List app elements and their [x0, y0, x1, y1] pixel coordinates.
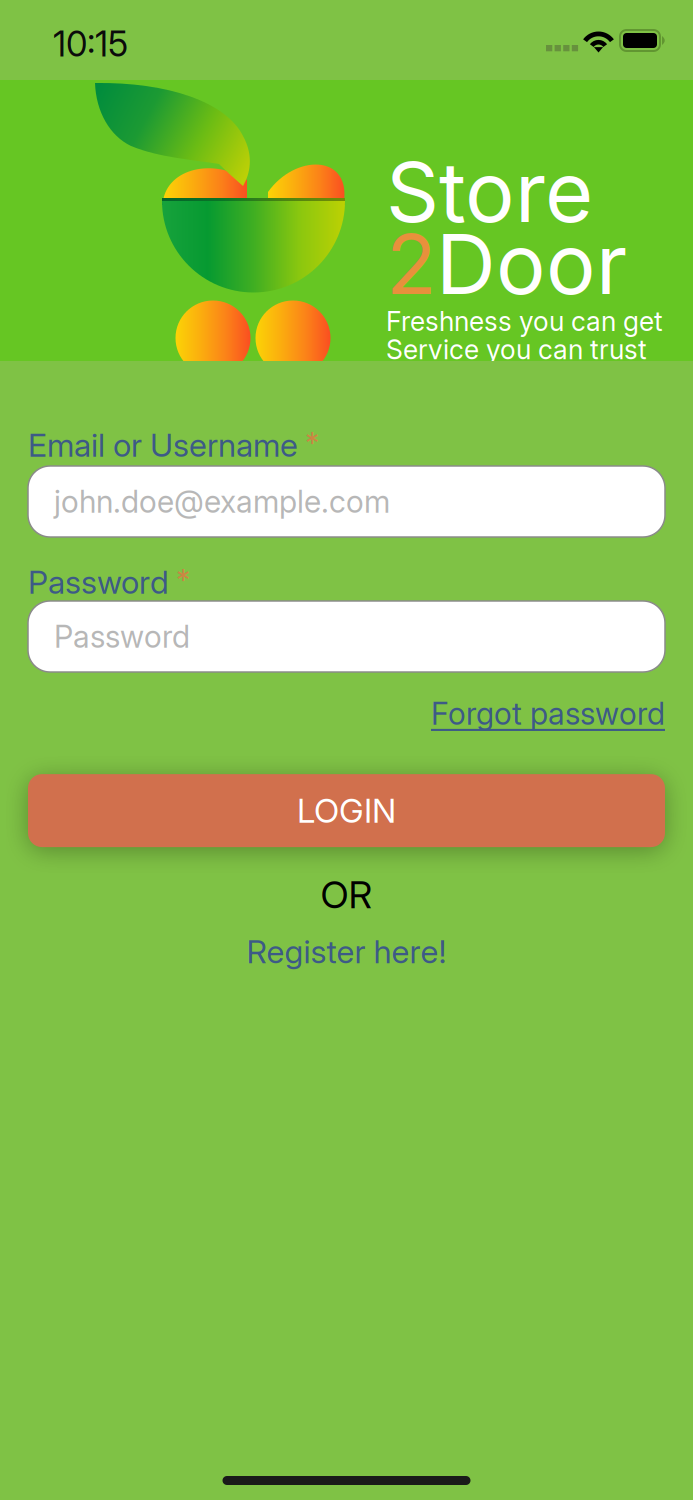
staticText: Register here! [246, 932, 446, 971]
staticText: Freshness you can get [386, 305, 663, 337]
staticText: john.doe@example.com [54, 483, 390, 520]
staticText: Forgot password [431, 695, 665, 732]
staticText: LOGIN [297, 790, 396, 831]
staticText: Password [28, 563, 169, 601]
staticText: Door [436, 214, 627, 314]
button[interactable]: Register here! [28, 932, 665, 971]
staticText: OR [320, 872, 372, 917]
staticText: Email or Username [28, 426, 298, 464]
staticText: Service you can trust [386, 333, 647, 366]
staticText: * [305, 426, 319, 461]
staticText: Store [386, 142, 593, 242]
staticText: 10:15 [53, 23, 128, 65]
staticText: 2 [386, 214, 436, 314]
button[interactable]: LOGIN [28, 774, 665, 847]
button[interactable]: Forgot password [28, 695, 665, 732]
staticText: Password [54, 618, 190, 655]
staticText: * [176, 563, 190, 598]
